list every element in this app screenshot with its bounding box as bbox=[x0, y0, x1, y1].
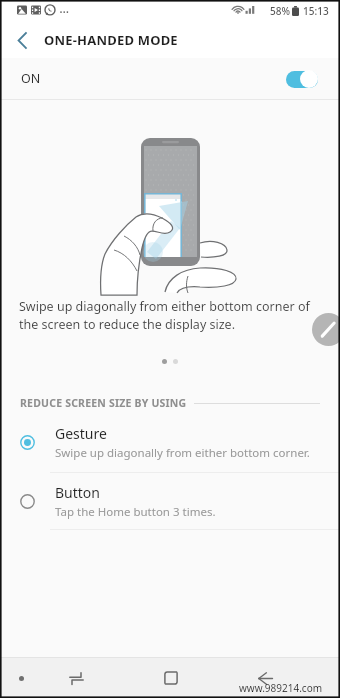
button[interactable]: Gesture bbox=[0, 412, 340, 472]
button[interactable]: Edit bbox=[312, 313, 340, 346]
button[interactable]: Recent apps bbox=[56, 658, 96, 698]
button[interactable]: Home bbox=[151, 658, 191, 698]
button[interactable]: ON bbox=[0, 58, 340, 99]
button[interactable]: Back bbox=[245, 658, 285, 698]
button[interactable]: Menu bbox=[5, 658, 37, 698]
staticText: 58% bbox=[270, 4, 290, 18]
staticText: Swipe up diagonally from either bottom c… bbox=[19, 298, 316, 333]
staticText: Swipe up diagonally from either bottom c… bbox=[55, 445, 310, 461]
staticText: REDUCE SCREEN SIZE BY USING bbox=[20, 396, 187, 410]
staticText: ONE-HANDED MODE bbox=[44, 31, 178, 49]
staticText: ON bbox=[21, 70, 41, 87]
staticText: Tap the Home button 3 times. bbox=[55, 504, 216, 520]
staticText: 15:13 bbox=[303, 4, 329, 18]
staticText: Button bbox=[55, 483, 100, 502]
staticText: Gesture bbox=[55, 424, 107, 443]
button[interactable]: Navigate up bbox=[0, 22, 44, 58]
staticText: www.989214.com bbox=[239, 681, 323, 695]
button[interactable]: Button bbox=[0, 473, 340, 529]
